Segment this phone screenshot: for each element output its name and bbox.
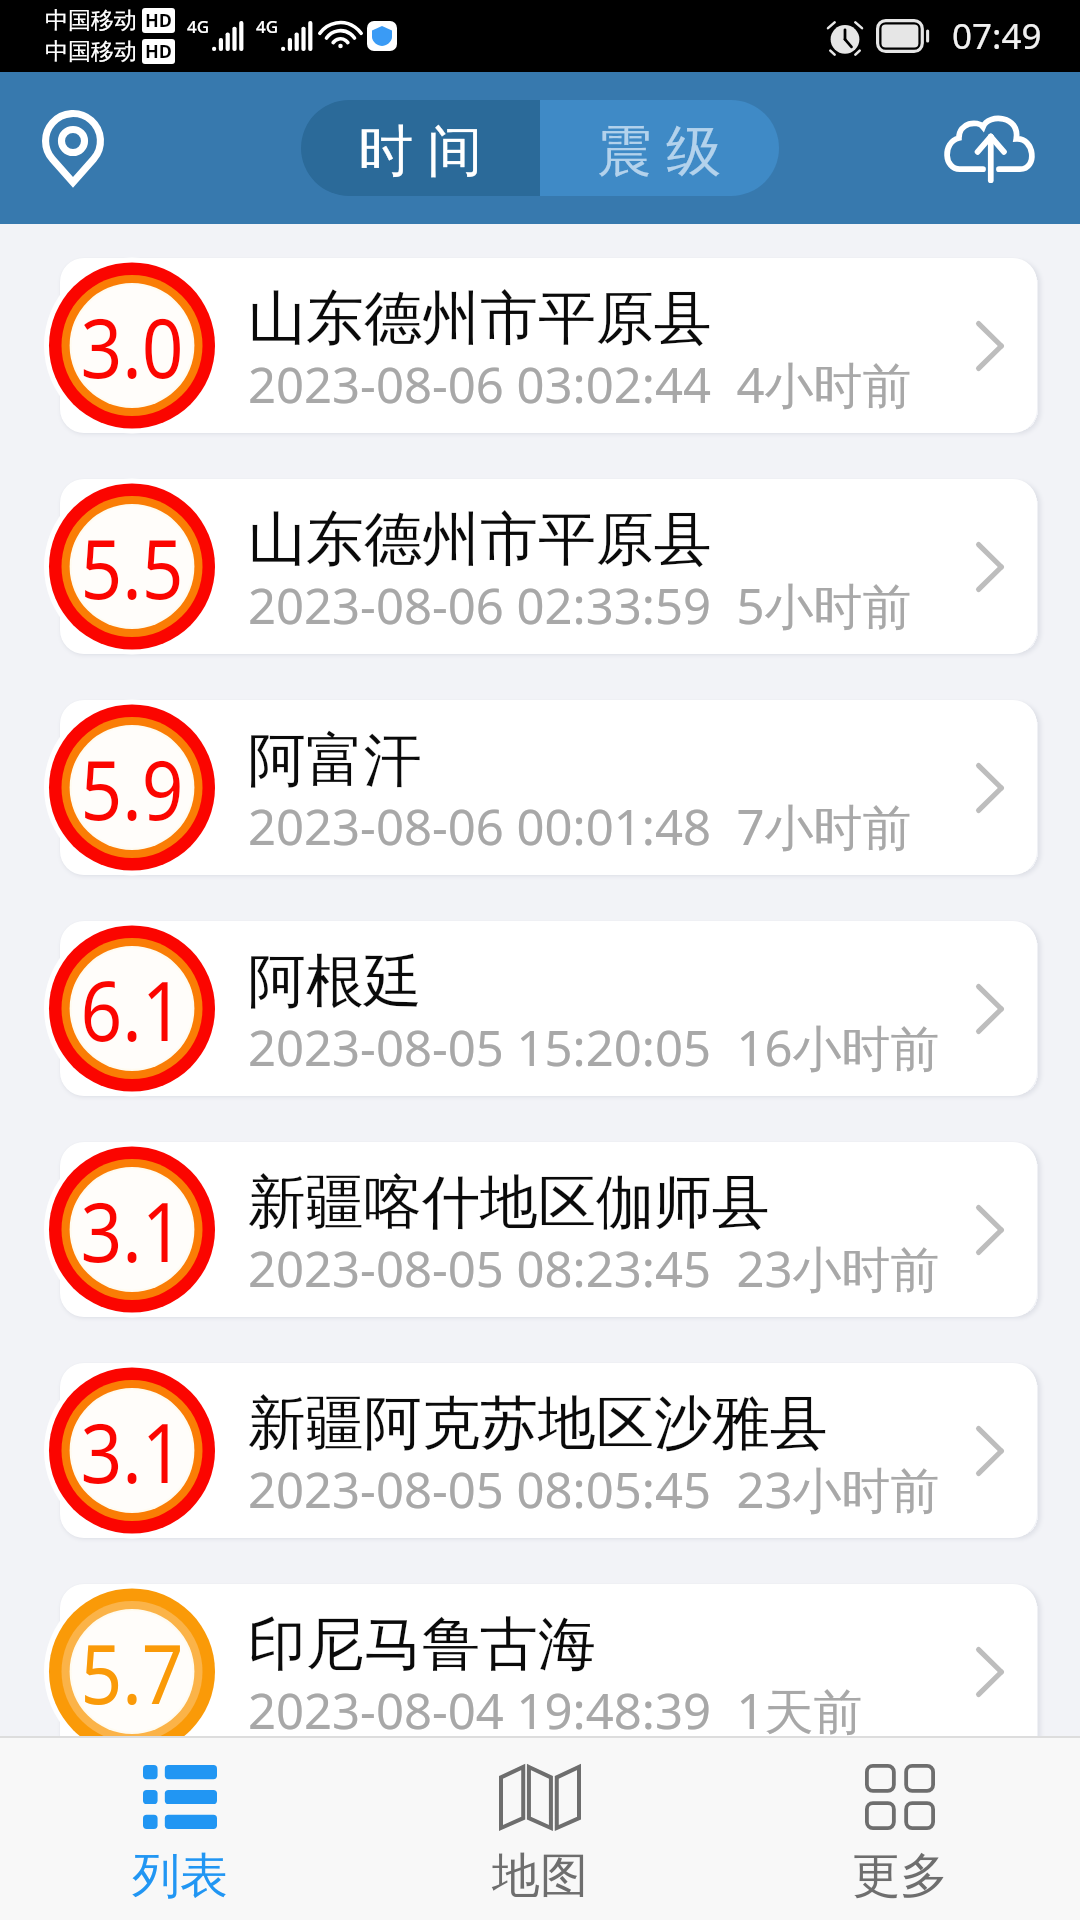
button[interactable]: 3.1 — [0, 1142, 1080, 1317]
button[interactable]: 时 间 — [301, 100, 540, 196]
staticText: 地图 — [492, 1846, 588, 1906]
button[interactable]: 震 级 — [540, 100, 779, 196]
staticText: 列表 — [132, 1846, 228, 1906]
staticText: 山东德州市平原县 — [248, 282, 712, 355]
staticText: 2023-08-06 03:02:44 4小时前 — [248, 351, 912, 418]
button[interactable]: 5.5 — [0, 479, 1080, 654]
staticText: HD — [145, 39, 172, 64]
staticText: 阿富汗 — [248, 724, 422, 797]
staticText: 3.1 — [80, 1395, 184, 1506]
staticText: 2023-08-05 15:20:05 16小时前 — [248, 1014, 940, 1081]
button[interactable]: 地图 — [360, 1738, 720, 1920]
staticText: 新疆喀什地区伽师县 — [248, 1166, 770, 1239]
staticText: 2023-08-06 00:01:48 7小时前 — [248, 793, 912, 860]
button[interactable]: 3.1 — [0, 1363, 1080, 1538]
button[interactable]: 5.9 — [0, 700, 1080, 875]
staticText: 5.7 — [80, 1616, 184, 1727]
staticText: 山东德州市平原县 — [248, 503, 712, 576]
staticText: HD — [145, 8, 172, 33]
staticText: 震 级 — [597, 111, 722, 186]
staticText: 更多 — [852, 1846, 948, 1906]
staticText: 中国移动 — [45, 37, 137, 66]
button[interactable]: 列表 — [0, 1738, 360, 1920]
staticText: 2023-08-06 02:33:59 5小时前 — [248, 572, 912, 639]
button[interactable]: 5.7 — [0, 1584, 1080, 1736]
button[interactable]: 更多 — [720, 1738, 1080, 1920]
button[interactable]: 3.0 — [0, 258, 1080, 433]
staticText: 中国移动 — [45, 6, 137, 35]
staticText: 印尼马鲁古海 — [248, 1608, 596, 1681]
staticText: 07:49 — [952, 12, 1042, 60]
staticText: 3.0 — [80, 290, 184, 401]
staticText: 时 间 — [358, 111, 483, 186]
button[interactable]: Upload — [938, 98, 1038, 198]
staticText: 5.5 — [80, 511, 184, 622]
staticText: 新疆阿克苏地区沙雅县 — [248, 1387, 828, 1460]
staticText: 5.9 — [80, 732, 184, 843]
button[interactable]: Location — [25, 100, 121, 196]
staticText: 4G — [187, 15, 210, 38]
staticText: 2023-08-05 08:23:45 23小时前 — [248, 1235, 940, 1302]
staticText: 阿根廷 — [248, 945, 422, 1018]
button[interactable]: 6.1 — [0, 921, 1080, 1096]
staticText: 2023-08-04 19:48:39 1天前 — [248, 1677, 863, 1736]
staticText: 2023-08-05 08:05:45 23小时前 — [248, 1456, 940, 1523]
staticText: 4G — [256, 15, 279, 38]
staticText: 6.1 — [80, 953, 184, 1064]
staticText: 3.1 — [80, 1174, 184, 1285]
